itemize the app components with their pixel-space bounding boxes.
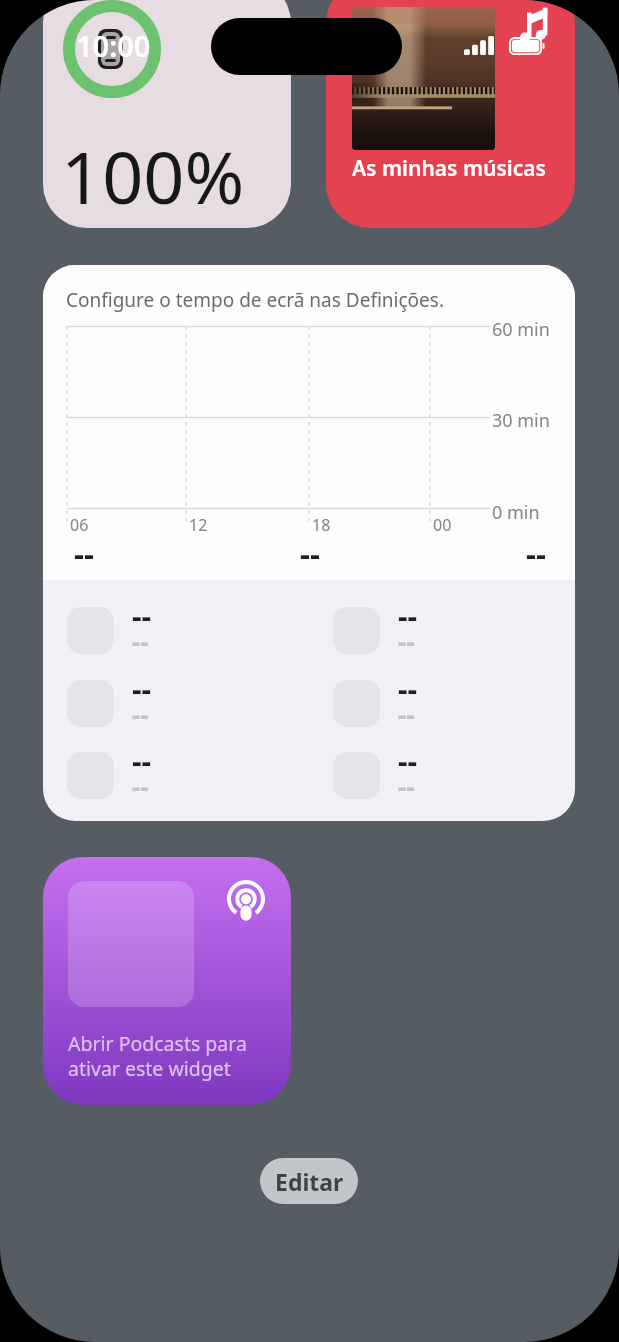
button[interactable]: Podcasts xyxy=(43,857,291,1105)
other: Music battery xyxy=(503,4,551,57)
staticText: -- xyxy=(526,532,546,574)
staticText: -- xyxy=(398,668,418,709)
staticText: -- xyxy=(398,624,415,659)
button[interactable]: Editar xyxy=(260,1158,358,1204)
staticText: -- xyxy=(300,532,320,574)
staticText: 12 xyxy=(189,514,208,536)
staticText: Abrir Podcasts para ativar este widget xyxy=(68,1030,247,1082)
staticText: 100% xyxy=(61,127,245,225)
staticText: -- xyxy=(132,668,152,709)
staticText: -- xyxy=(398,740,418,781)
staticText: 0 min xyxy=(492,500,540,525)
staticText: -- xyxy=(132,697,149,732)
button[interactable]: Music battery xyxy=(326,0,575,228)
staticText: -- xyxy=(132,624,149,659)
staticText: 30 min xyxy=(492,408,550,433)
staticText: -- xyxy=(132,740,152,781)
staticText: -- xyxy=(132,769,149,804)
staticText: 06 xyxy=(70,514,89,536)
other: Podcasts xyxy=(227,880,265,924)
staticText: -- xyxy=(398,697,415,732)
staticText: As minhas músicas xyxy=(352,154,546,183)
staticText: 10:00 xyxy=(76,26,151,65)
staticText: 18 xyxy=(312,514,331,536)
button[interactable]: 10:00 xyxy=(43,0,291,228)
staticText: -- xyxy=(398,769,415,804)
staticText: -- xyxy=(74,532,94,574)
staticText: 60 min xyxy=(492,317,550,342)
staticText: Editar xyxy=(275,1166,344,1197)
staticText: 00 xyxy=(433,514,452,536)
staticText: -- xyxy=(132,595,152,636)
staticText: Configure o tempo de ecrã nas Definições… xyxy=(66,287,445,313)
staticText: -- xyxy=(398,595,418,636)
button[interactable]: Configure o tempo de ecrã nas Definições… xyxy=(43,265,575,821)
